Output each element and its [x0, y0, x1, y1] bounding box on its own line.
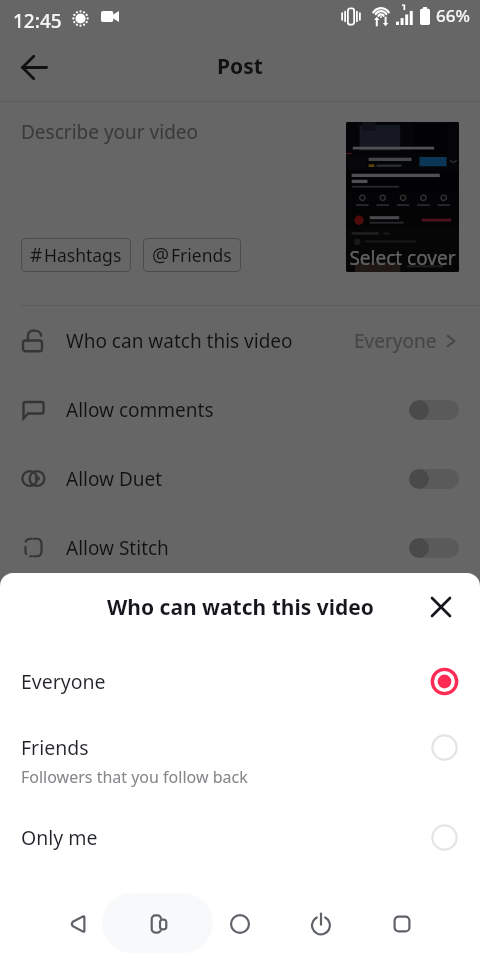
- button[interactable]: Back: [12, 45, 56, 89]
- staticText: Allow Duet: [66, 466, 163, 492]
- staticText: Who can watch this video: [66, 328, 293, 354]
- button[interactable]: @: [143, 238, 241, 272]
- button[interactable]: Close: [424, 590, 458, 624]
- button[interactable]: Everyone: [0, 641, 480, 721]
- button[interactable]: Allow Duet: [409, 469, 459, 489]
- staticText: Allow comments: [66, 397, 214, 423]
- button[interactable]: Who can watch this video: [0, 306, 480, 375]
- staticText: Who can watch this video: [107, 593, 374, 622]
- button[interactable]: Allow comments: [0, 375, 480, 444]
- staticText: Everyone: [21, 668, 106, 695]
- staticText: Friends: [171, 243, 232, 267]
- button[interactable]: Home: [218, 902, 262, 946]
- staticText: 12:45: [13, 8, 62, 34]
- button[interactable]: Only me: [0, 801, 480, 873]
- button[interactable]: Back: [56, 902, 100, 946]
- button[interactable]: Friends: [0, 721, 480, 801]
- button[interactable]: Recents: [380, 902, 424, 946]
- button[interactable]: Screenshot: [137, 902, 181, 946]
- button[interactable]: Power: [299, 902, 343, 946]
- staticText: Friends: [21, 734, 89, 761]
- staticText: Describe your video: [21, 119, 199, 145]
- button[interactable]: Allow comments: [409, 400, 459, 420]
- staticText: #: [30, 242, 43, 268]
- staticText: Allow Stitch: [66, 535, 169, 561]
- staticText: Only me: [21, 824, 98, 851]
- staticText: 66%: [436, 4, 470, 27]
- staticText: Hashtags: [44, 243, 122, 267]
- button[interactable]: Allow Stitch: [409, 538, 459, 558]
- button[interactable]: Allow Stitch: [0, 513, 480, 582]
- staticText: Post: [217, 52, 263, 81]
- button[interactable]: Select cover: [346, 122, 459, 272]
- staticText: @: [152, 242, 170, 268]
- button[interactable]: Allow Duet: [0, 444, 480, 513]
- staticText: Everyone: [354, 328, 437, 354]
- staticText: Followers that you follow back: [21, 766, 248, 788]
- button[interactable]: #: [21, 238, 131, 272]
- staticText: Select cover: [346, 245, 459, 272]
